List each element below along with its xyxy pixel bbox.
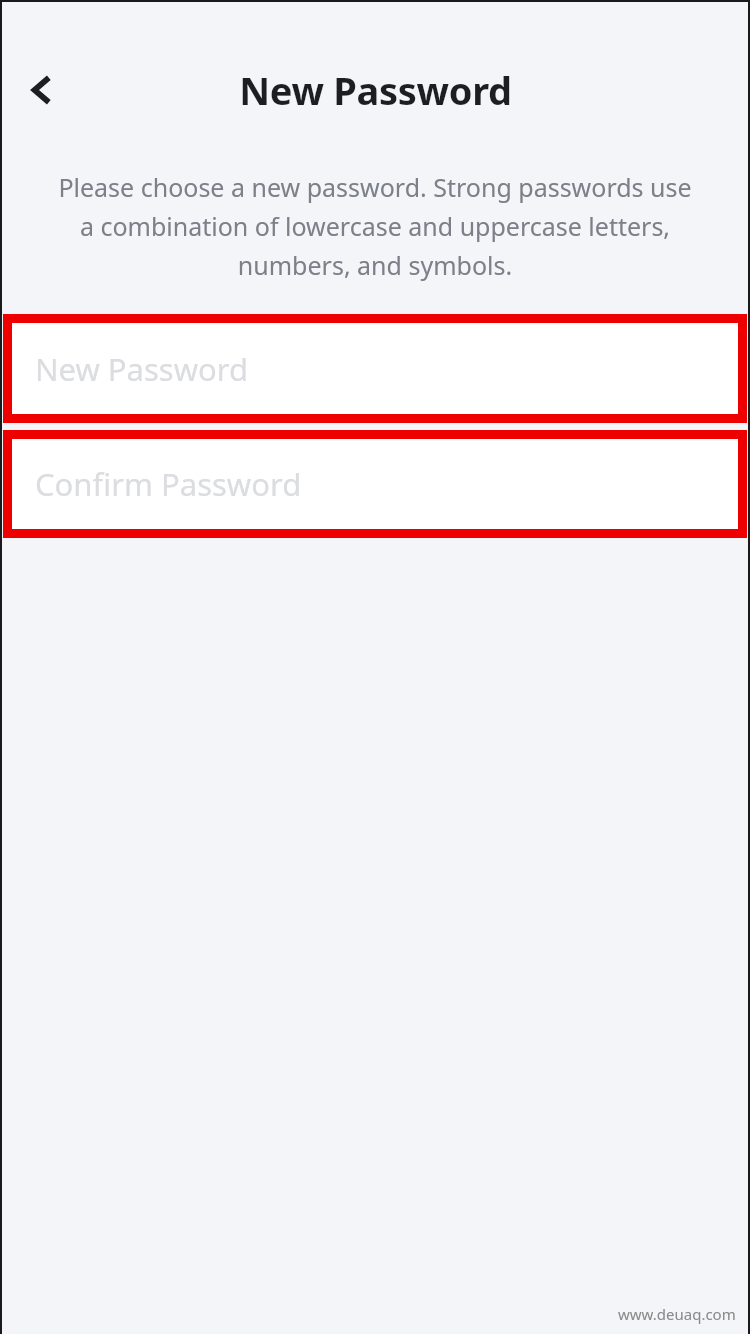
- staticText: New Password: [35, 348, 249, 390]
- button[interactable]: Confirm Password: [3, 430, 747, 538]
- staticText: New Password: [239, 64, 512, 116]
- button[interactable]: New Password: [3, 314, 747, 423]
- staticText: Confirm Password: [35, 463, 302, 505]
- staticText: Please choose a new password. Strong pas…: [58, 170, 692, 282]
- staticText: www.deuaq.com: [618, 1304, 736, 1324]
- button[interactable]: Back: [14, 62, 70, 118]
